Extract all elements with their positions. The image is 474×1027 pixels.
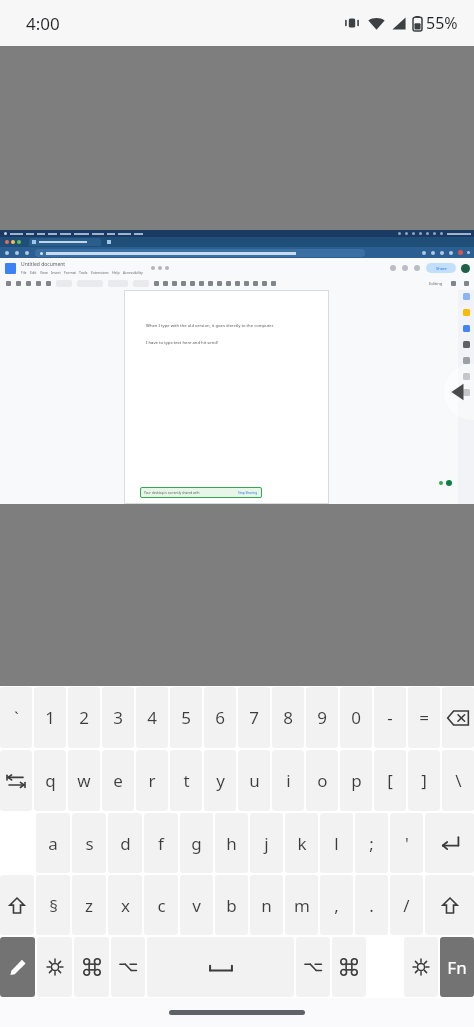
staticText: - [387, 706, 393, 729]
button[interactable]: y [204, 750, 236, 811]
button[interactable]: 5 [170, 687, 202, 748]
button[interactable]: = [408, 687, 440, 748]
staticText: 2 [79, 706, 89, 729]
button[interactable]: 3 [102, 687, 134, 748]
button[interactable]: k [285, 813, 318, 873]
button[interactable]: Fn [440, 937, 474, 997]
button[interactable]: o [306, 750, 338, 811]
button[interactable]: i [272, 750, 304, 811]
staticText: u [249, 769, 260, 792]
button[interactable]: g [180, 813, 213, 873]
button[interactable]: ` [0, 687, 32, 748]
button[interactable]: c [144, 875, 178, 935]
staticText: c [157, 894, 166, 917]
button[interactable]: shift [0, 875, 34, 935]
staticText: k [297, 832, 307, 855]
staticText: p [351, 769, 362, 792]
staticText: Format [64, 270, 76, 275]
button[interactable]: cmd [332, 937, 366, 997]
button[interactable]: 8 [272, 687, 304, 748]
staticText: ' [405, 832, 409, 855]
staticText: File [21, 270, 27, 275]
button[interactable]: opt [111, 937, 145, 997]
button[interactable]: Home [169, 1010, 305, 1015]
staticText: q [45, 769, 56, 792]
button[interactable]: [ [374, 750, 406, 811]
button[interactable]: l [320, 813, 353, 873]
button[interactable]: r [136, 750, 168, 811]
button[interactable]: ' [390, 813, 423, 873]
button[interactable]: n [250, 875, 283, 935]
staticText: \ [455, 769, 462, 792]
button[interactable]: . [355, 875, 388, 935]
button[interactable]: z [72, 875, 106, 935]
button[interactable]: backspace [442, 687, 474, 748]
button[interactable]: 7 [238, 687, 270, 748]
staticText: When I type with the old version, it goe… [146, 323, 274, 329]
button[interactable]: x [108, 875, 142, 935]
staticText: j [264, 832, 269, 855]
button[interactable]: d [108, 813, 142, 873]
staticText: 1 [45, 706, 55, 729]
button[interactable]: opt [296, 937, 330, 997]
staticText: View [40, 270, 48, 275]
button[interactable]: 0 [340, 687, 372, 748]
button[interactable]: 2 [68, 687, 100, 748]
staticText: = [419, 706, 429, 729]
button[interactable]: ] [408, 750, 440, 811]
staticText: , [334, 894, 339, 917]
button[interactable]: h [215, 813, 248, 873]
staticText: Insert [51, 270, 61, 275]
button[interactable]: , [320, 875, 353, 935]
button[interactable]: \ [442, 750, 474, 811]
button[interactable]: - [374, 687, 406, 748]
staticText: 5 [181, 706, 191, 729]
staticText: 55% [426, 12, 458, 34]
button[interactable]: j [250, 813, 283, 873]
button[interactable]: ctrl [404, 937, 438, 997]
button[interactable]: f [144, 813, 178, 873]
button[interactable]: 6 [204, 687, 236, 748]
button[interactable]: u [238, 750, 270, 811]
staticText: x [121, 894, 130, 917]
button[interactable]: space [147, 937, 294, 997]
staticText: 4 [147, 706, 157, 729]
button[interactable]: s [72, 813, 106, 873]
button[interactable]: tab [0, 750, 32, 811]
staticText: i [286, 769, 291, 792]
button[interactable]: a [36, 813, 70, 873]
button[interactable]: / [390, 875, 423, 935]
button[interactable]: Show controls [444, 364, 474, 420]
staticText: a [48, 832, 58, 855]
button[interactable]: w [68, 750, 100, 811]
staticText: f [158, 832, 164, 855]
button[interactable]: 9 [306, 687, 338, 748]
staticText: Extensions [91, 270, 109, 275]
staticText: [ [387, 769, 393, 792]
staticText: e [113, 769, 123, 792]
button[interactable]: pencil [0, 937, 35, 997]
staticText: / [403, 894, 410, 917]
button[interactable]: ctrl [37, 937, 72, 997]
staticText: Untitled document [21, 261, 66, 268]
staticText: Stop Sharing [238, 491, 258, 495]
button[interactable]: 1 [34, 687, 66, 748]
button[interactable]: t [170, 750, 202, 811]
button[interactable]: p [340, 750, 372, 811]
button[interactable]: § [36, 875, 70, 935]
button[interactable]: e [102, 750, 134, 811]
staticText: r [148, 769, 156, 792]
button[interactable]: enter [425, 813, 474, 873]
button[interactable]: shift [425, 875, 474, 935]
button[interactable]: m [285, 875, 318, 935]
button[interactable]: cmd [74, 937, 109, 997]
button[interactable]: 4 [136, 687, 168, 748]
button[interactable]: q [34, 750, 66, 811]
button[interactable]: v [180, 875, 213, 935]
staticText: 6 [215, 706, 225, 729]
button[interactable]: ; [355, 813, 388, 873]
staticText: I have to type text here and hit send! [146, 340, 219, 346]
staticText: 7 [249, 706, 259, 729]
button[interactable]: b [215, 875, 248, 935]
staticText: 8 [283, 706, 293, 729]
